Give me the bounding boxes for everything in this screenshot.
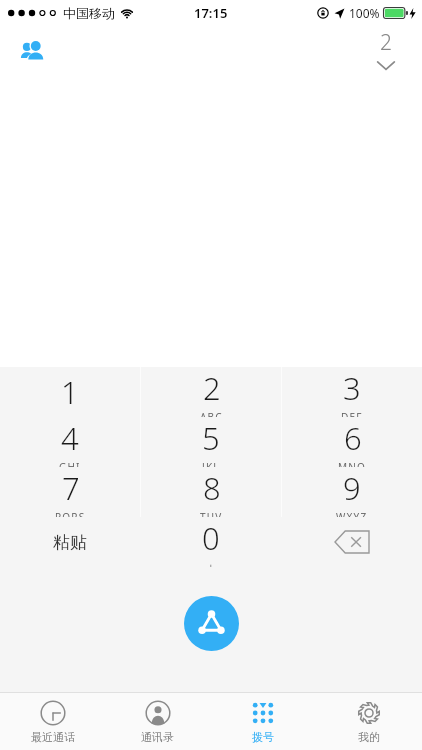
staticText: MNO [338,460,367,467]
button[interactable]: Call [184,596,239,651]
button[interactable]: Show 2 numbers [364,28,408,71]
staticText: 7 [62,467,80,509]
button[interactable]: Contacts [10,30,54,74]
button[interactable]: 通讯录 [105,693,210,750]
staticText: 我的 [358,730,380,744]
staticText: + [208,560,215,567]
staticText: 17:15 [194,4,228,22]
staticText: TUV [200,510,223,517]
button[interactable]: 1 [0,367,140,417]
staticText: 8 [203,467,221,509]
staticText: 粘贴 [53,532,87,553]
staticText: 2 [380,28,392,57]
staticText: 1 [61,371,79,413]
button[interactable]: 最近通话 [0,693,105,750]
button[interactable]: 9 [282,467,422,517]
button[interactable]: 8 [141,467,281,517]
staticText: JKL [202,460,220,467]
staticText: 9 [343,467,361,509]
staticText: 3 [343,367,361,409]
staticText: 5 [202,417,220,459]
button[interactable]: 7 [0,467,140,517]
button[interactable]: 2 [141,367,281,417]
button[interactable]: 4 [0,417,140,467]
staticText: GHI [59,460,81,467]
button[interactable]: 我的 [316,693,422,750]
staticText: 拨号 [252,730,274,744]
staticText: 0 [202,517,220,559]
button[interactable]: 0 [141,517,281,567]
staticText: 100% [349,5,380,21]
button[interactable]: 5 [141,417,281,467]
button[interactable]: 6 [282,417,422,467]
staticText: 最近通话 [31,730,75,744]
button[interactable]: 拨号 [210,693,316,750]
staticText: ABC [200,410,223,417]
staticText: 4 [61,417,79,459]
button[interactable]: 粘贴 [0,517,140,567]
staticText: PQRS [55,510,86,517]
button[interactable]: 3 [282,367,422,417]
button[interactable]: Backspace [282,517,422,567]
staticText: 2 [203,367,221,409]
staticText: 通讯录 [141,730,174,744]
staticText: 中国移动 [63,5,115,21]
staticText: 6 [344,417,362,459]
staticText: DEF [341,410,363,417]
staticText: WXYZ [336,510,368,517]
